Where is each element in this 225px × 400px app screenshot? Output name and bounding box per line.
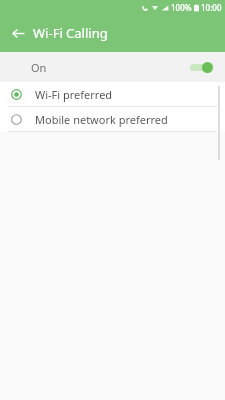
button[interactable]: Back [7,22,29,44]
staticText: Wi-Fi Calling [33,24,108,42]
staticText: Mobile network preferred [35,112,168,127]
button[interactable]: Wi-Fi preferred [0,82,225,106]
staticText: 100% [171,2,192,13]
staticText: 10:00 [201,2,222,13]
staticText: On [31,60,47,75]
button[interactable]: Mobile network preferred [0,107,225,131]
staticText: Wi-Fi preferred [35,87,113,102]
button[interactable]: On [0,52,225,82]
